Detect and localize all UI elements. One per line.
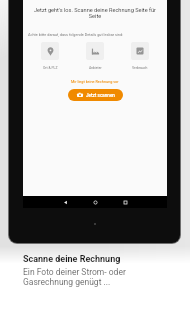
button[interactable] xyxy=(41,42,59,60)
staticText: Jetzt scannen xyxy=(86,93,115,98)
button[interactable]: Recent apps xyxy=(110,196,140,208)
button[interactable]: Home xyxy=(80,196,110,208)
staticText: Scanne deine Rechnung xyxy=(23,254,121,265)
button[interactable] xyxy=(131,42,149,60)
button[interactable] xyxy=(86,42,104,60)
button[interactable]: Jetzt scannen xyxy=(68,89,123,101)
staticText: Ein Foto deiner Strom- oder Gasrechnung … xyxy=(23,267,126,287)
staticText: Jetzt geht's los. Scanne deine Rechnung … xyxy=(30,7,160,19)
button[interactable]: Back xyxy=(50,196,80,208)
staticText: Achte bitte darauf, dass folgende Detail… xyxy=(28,32,167,36)
staticText: Verbrauch xyxy=(132,66,148,70)
staticText: Ort & PLZ xyxy=(43,66,58,70)
staticText: Mir liegt keine Rechnung vor xyxy=(71,79,119,83)
button[interactable]: Mir liegt keine Rechnung vor xyxy=(71,79,119,83)
staticText: Anbieter xyxy=(89,66,102,70)
